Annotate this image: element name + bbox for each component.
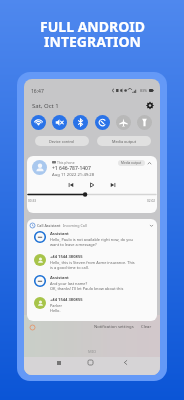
staticText: Hello, Paulo is not available right now,… <box>50 237 133 242</box>
button[interactable]: Bluetooth <box>73 115 88 130</box>
staticText: is a good time to call. <box>50 265 89 270</box>
staticText: Hello, this is Steven from Acme insuranc… <box>50 260 135 265</box>
staticText: INTEGRATION <box>44 32 141 51</box>
button[interactable]: History <box>30 325 35 330</box>
button[interactable]: Device control <box>35 136 89 146</box>
staticText: Notification settings <box>94 324 134 330</box>
button[interactable]: Flashlight <box>137 115 152 130</box>
button[interactable]: Recents <box>53 357 64 368</box>
staticText: Aug 11 2022 21:49:28 <box>52 172 95 178</box>
staticText: Hello. <box>50 308 61 313</box>
staticText: +44 1544 380855 <box>50 254 83 260</box>
button[interactable]: Notification settings <box>94 324 134 330</box>
button[interactable]: Auto rotate <box>95 115 110 130</box>
staticText: Media output <box>121 161 142 165</box>
button[interactable]: Previous <box>66 180 76 190</box>
staticText: MIO <box>88 349 97 354</box>
button[interactable]: Play <box>87 180 97 190</box>
button[interactable]: Collapse <box>149 223 154 228</box>
staticText: Device control <box>49 139 75 144</box>
staticText: FULL ANDROID <box>40 17 145 36</box>
staticText: OK, thanks! I'll let Paulo know about th… <box>50 286 124 291</box>
staticText: +44 1544 380855 <box>50 297 83 303</box>
staticText: Call Assistant <box>37 223 61 228</box>
button[interactable]: Media output <box>118 160 145 166</box>
staticText: +1 646-787-1407 <box>52 165 91 172</box>
button[interactable]: Sound off <box>52 115 67 130</box>
button[interactable]: Home <box>85 357 96 368</box>
button[interactable]: Previous <box>27 156 157 213</box>
staticText: 16:47 <box>31 88 44 93</box>
staticText: Assistant <box>50 275 69 281</box>
staticText: want to leave a message? <box>50 242 97 247</box>
staticText: Parker <box>50 303 63 308</box>
staticText: Media output <box>112 139 137 144</box>
staticText: Clear <box>141 324 152 330</box>
staticText: And your last name? <box>50 281 88 286</box>
staticText: This phone <box>57 160 75 165</box>
button[interactable]: Clear <box>141 324 152 330</box>
staticText: Incoming Call <box>63 223 87 228</box>
staticText: Sat, Oct 1 <box>32 102 59 109</box>
button[interactable]: Next <box>108 180 118 190</box>
button[interactable]: Wi-Fi <box>31 115 46 130</box>
button[interactable]: Settings <box>146 102 154 109</box>
staticText: 00:33 <box>28 199 37 203</box>
staticText: 02:02 <box>147 199 156 203</box>
staticText: Assistant <box>50 231 69 237</box>
button[interactable]: Media output <box>97 136 151 146</box>
staticText: 83% <box>140 88 148 93</box>
button[interactable]: Back <box>120 357 131 368</box>
button[interactable]: Airplane mode <box>116 115 131 130</box>
